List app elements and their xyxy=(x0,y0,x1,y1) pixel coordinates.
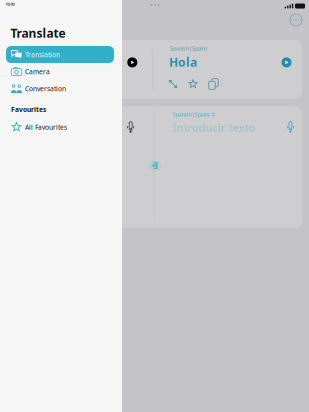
staticText: Introducir texto xyxy=(172,120,255,135)
staticText: Hola xyxy=(169,54,197,70)
button[interactable]: Translation xyxy=(6,46,114,63)
staticText: Translate xyxy=(10,25,65,41)
button[interactable]: Dictate translation xyxy=(279,116,301,138)
staticText: Translation xyxy=(25,50,60,59)
button[interactable]: More xyxy=(287,11,305,29)
button[interactable]: Copy xyxy=(204,76,222,92)
button[interactable]: Play translation xyxy=(275,51,297,73)
button[interactable]: Play original xyxy=(121,51,143,73)
button[interactable]: Expand xyxy=(164,76,182,92)
staticText: All Favourites xyxy=(25,123,67,132)
button[interactable]: Dictate xyxy=(120,116,142,138)
staticText: Favourites xyxy=(11,105,46,114)
staticText: Spanish (Spain) xyxy=(172,111,209,118)
button[interactable]: Conversation xyxy=(6,80,114,97)
button[interactable]: Swap languages xyxy=(146,156,164,174)
staticText: Conversation xyxy=(25,84,66,93)
staticText: 10:00 xyxy=(5,1,14,7)
button[interactable]: Choose source language xyxy=(172,110,224,119)
button[interactable]: All Favourites xyxy=(6,118,114,135)
button[interactable]: Camera xyxy=(6,63,114,80)
staticText: Camera xyxy=(25,67,50,76)
staticText: Spanish (Spain) xyxy=(170,45,207,52)
button[interactable]: Add to favourites xyxy=(184,76,202,92)
